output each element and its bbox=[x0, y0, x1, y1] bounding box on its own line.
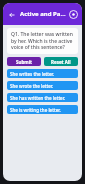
staticText: Reset All bbox=[51, 59, 71, 65]
staticText: Active and Passive... bbox=[20, 10, 67, 18]
button[interactable]: She has written the letter. bbox=[7, 93, 78, 102]
staticText: She writes the letter. bbox=[10, 71, 54, 77]
staticText: She is writing the letter. bbox=[10, 107, 61, 113]
staticText: She wrote the letter. bbox=[10, 83, 54, 89]
button[interactable]: Reset All bbox=[44, 57, 78, 66]
button[interactable]: Info bbox=[67, 8, 79, 20]
button[interactable]: Back bbox=[6, 9, 17, 20]
staticText: Submit bbox=[16, 59, 32, 65]
button[interactable]: She writes the letter. bbox=[7, 69, 78, 78]
button[interactable]: She wrote the letter. bbox=[7, 81, 78, 90]
staticText: She has written the letter. bbox=[10, 95, 66, 101]
button[interactable]: Submit bbox=[7, 57, 41, 66]
staticText: Q1. The letter was written by her. Which… bbox=[11, 31, 74, 51]
button[interactable]: She is writing the letter. bbox=[7, 105, 78, 114]
